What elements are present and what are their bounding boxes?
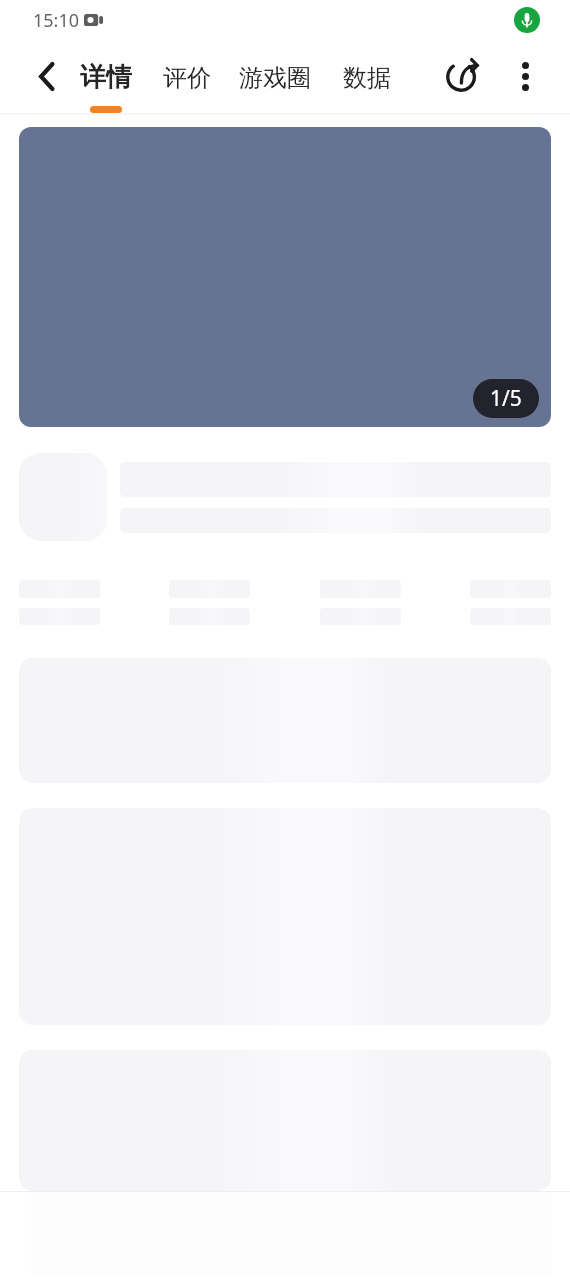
staticText: 15:10 [33, 8, 80, 33]
button[interactable]: Share [408, 40, 480, 113]
staticText: 数据 [343, 63, 391, 93]
staticText: 游戏圈 [239, 63, 311, 93]
button[interactable]: More options [480, 40, 570, 113]
staticText: 评价 [163, 63, 211, 93]
staticText: 详情 [80, 61, 132, 94]
staticText: 1/5 [490, 384, 522, 413]
button[interactable]: 数据 [343, 40, 391, 113]
button[interactable]: 详情 [80, 40, 132, 113]
button[interactable]: 游戏圈 [239, 40, 311, 113]
button[interactable]: 评价 [163, 40, 211, 113]
button[interactable]: Microphone in use [514, 7, 540, 33]
button[interactable]: Screenshot 1 of 5 [19, 127, 551, 427]
button[interactable]: Back [0, 40, 80, 113]
